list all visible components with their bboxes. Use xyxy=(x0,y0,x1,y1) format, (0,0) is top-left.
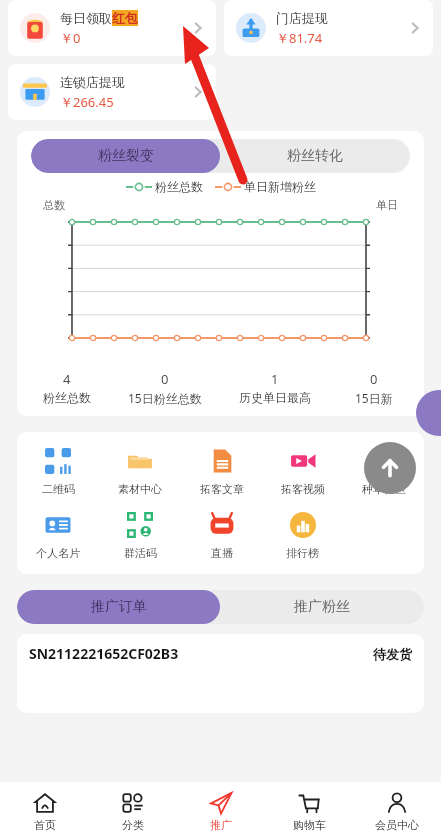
staticText: 会员中心 xyxy=(375,818,419,832)
button[interactable]: 门店提现 xyxy=(224,0,433,56)
staticText: SN2112221652CF02B3 xyxy=(29,644,373,663)
button[interactable]: 拓客文章 xyxy=(181,446,262,496)
staticText: 种草社区 xyxy=(362,482,406,496)
button[interactable]: 连锁店提现 xyxy=(8,64,216,120)
staticText: 粉丝总数 xyxy=(155,179,203,194)
staticText: 1 xyxy=(271,370,279,388)
staticText: ￥266.45 xyxy=(60,93,114,111)
button[interactable]: 粉丝裂变 xyxy=(31,139,220,173)
staticText: 推广订单 xyxy=(91,598,147,616)
staticText: 每日领取 xyxy=(60,10,112,26)
button[interactable]: Scroll to top xyxy=(364,442,416,494)
button[interactable]: 分类 xyxy=(89,782,177,840)
button[interactable]: 首页 xyxy=(0,782,89,840)
staticText: 个人名片 xyxy=(36,546,80,560)
staticText: 拓客视频 xyxy=(281,482,325,496)
staticText: ￥81.74 xyxy=(276,29,323,47)
staticText: 拓客文章 xyxy=(200,482,244,496)
staticText: 15日粉丝总数 xyxy=(128,390,202,406)
staticText: 15日新 xyxy=(355,390,393,406)
button[interactable]: 粉丝转化 xyxy=(220,139,410,173)
button[interactable]: 个人名片 xyxy=(17,510,99,560)
staticText: 连锁店提现 xyxy=(60,74,125,90)
button[interactable]: 每日领取 xyxy=(8,0,216,56)
staticText: 门店提现 xyxy=(276,10,328,26)
staticText: 粉丝转化 xyxy=(287,147,343,165)
button[interactable]: 群活码 xyxy=(99,510,181,560)
staticText: 粉丝裂变 xyxy=(98,147,154,165)
staticText: 历史单日最高 xyxy=(239,390,311,405)
button[interactable]: 购物车 xyxy=(265,782,353,840)
button[interactable]: 种草社区 xyxy=(343,446,424,496)
staticText: 素材中心 xyxy=(118,482,162,496)
staticText: 首页 xyxy=(34,818,56,832)
button[interactable]: 推广订单 xyxy=(17,590,220,624)
staticText: 总数 xyxy=(43,198,65,212)
staticText: ￥0 xyxy=(60,29,81,47)
button[interactable]: 二维码 xyxy=(17,446,99,496)
button[interactable]: SN2112221652CF02B3 xyxy=(17,634,424,713)
button[interactable]: 推广粉丝 xyxy=(220,590,424,624)
staticText: 红包 xyxy=(112,10,138,26)
staticText: 直播 xyxy=(211,546,233,560)
staticText: 推广 xyxy=(210,818,232,832)
button[interactable]: 会员中心 xyxy=(353,782,441,840)
button[interactable]: 推广 xyxy=(177,782,265,840)
button[interactable]: 拓客视频 xyxy=(262,446,343,496)
button[interactable]: Customer service xyxy=(416,390,441,436)
staticText: 排行榜 xyxy=(286,546,319,560)
button[interactable]: 排行榜 xyxy=(262,510,343,560)
staticText: 单日新增粉丝 xyxy=(244,179,316,194)
button[interactable]: 直播 xyxy=(181,510,262,560)
staticText: 待发货 xyxy=(373,646,412,662)
staticText: 购物车 xyxy=(293,818,326,832)
staticText: 群活码 xyxy=(124,546,157,560)
staticText: 0 xyxy=(370,370,378,388)
staticText: 推广粉丝 xyxy=(294,598,350,616)
staticText: 粉丝总数 xyxy=(43,390,91,405)
staticText: 4 xyxy=(63,370,71,388)
button[interactable]: 素材中心 xyxy=(99,446,181,496)
staticText: 0 xyxy=(161,370,169,388)
staticText: 二维码 xyxy=(42,482,75,496)
staticText: 分类 xyxy=(122,818,144,832)
staticText: 单日 xyxy=(376,198,398,212)
